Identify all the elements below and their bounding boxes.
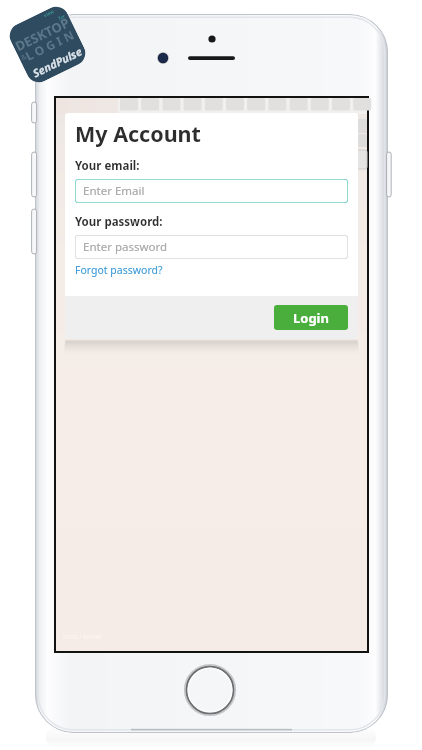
staticText: LOGIN	[23, 25, 80, 64]
staticText: My Account	[75, 119, 201, 148]
staticText: Login	[293, 309, 329, 327]
staticText: Enter Email	[83, 183, 145, 199]
button[interactable]: Enter Email	[75, 179, 348, 203]
button[interactable]: Forgot password?	[75, 263, 163, 277]
staticText: SendPulse	[30, 43, 85, 80]
staticText: DESKTOP	[12, 13, 73, 55]
button[interactable]: View desktop login for SendPulse	[5, 2, 90, 87]
staticText: for	[57, 13, 67, 22]
staticText: Your email:	[75, 158, 140, 174]
staticText: Enter password	[83, 239, 168, 255]
button[interactable]: Enter password	[75, 235, 348, 259]
button[interactable]: Login	[274, 305, 348, 330]
staticText: &	[19, 52, 29, 63]
staticText: view	[43, 8, 56, 19]
staticText: Your password:	[75, 214, 163, 230]
